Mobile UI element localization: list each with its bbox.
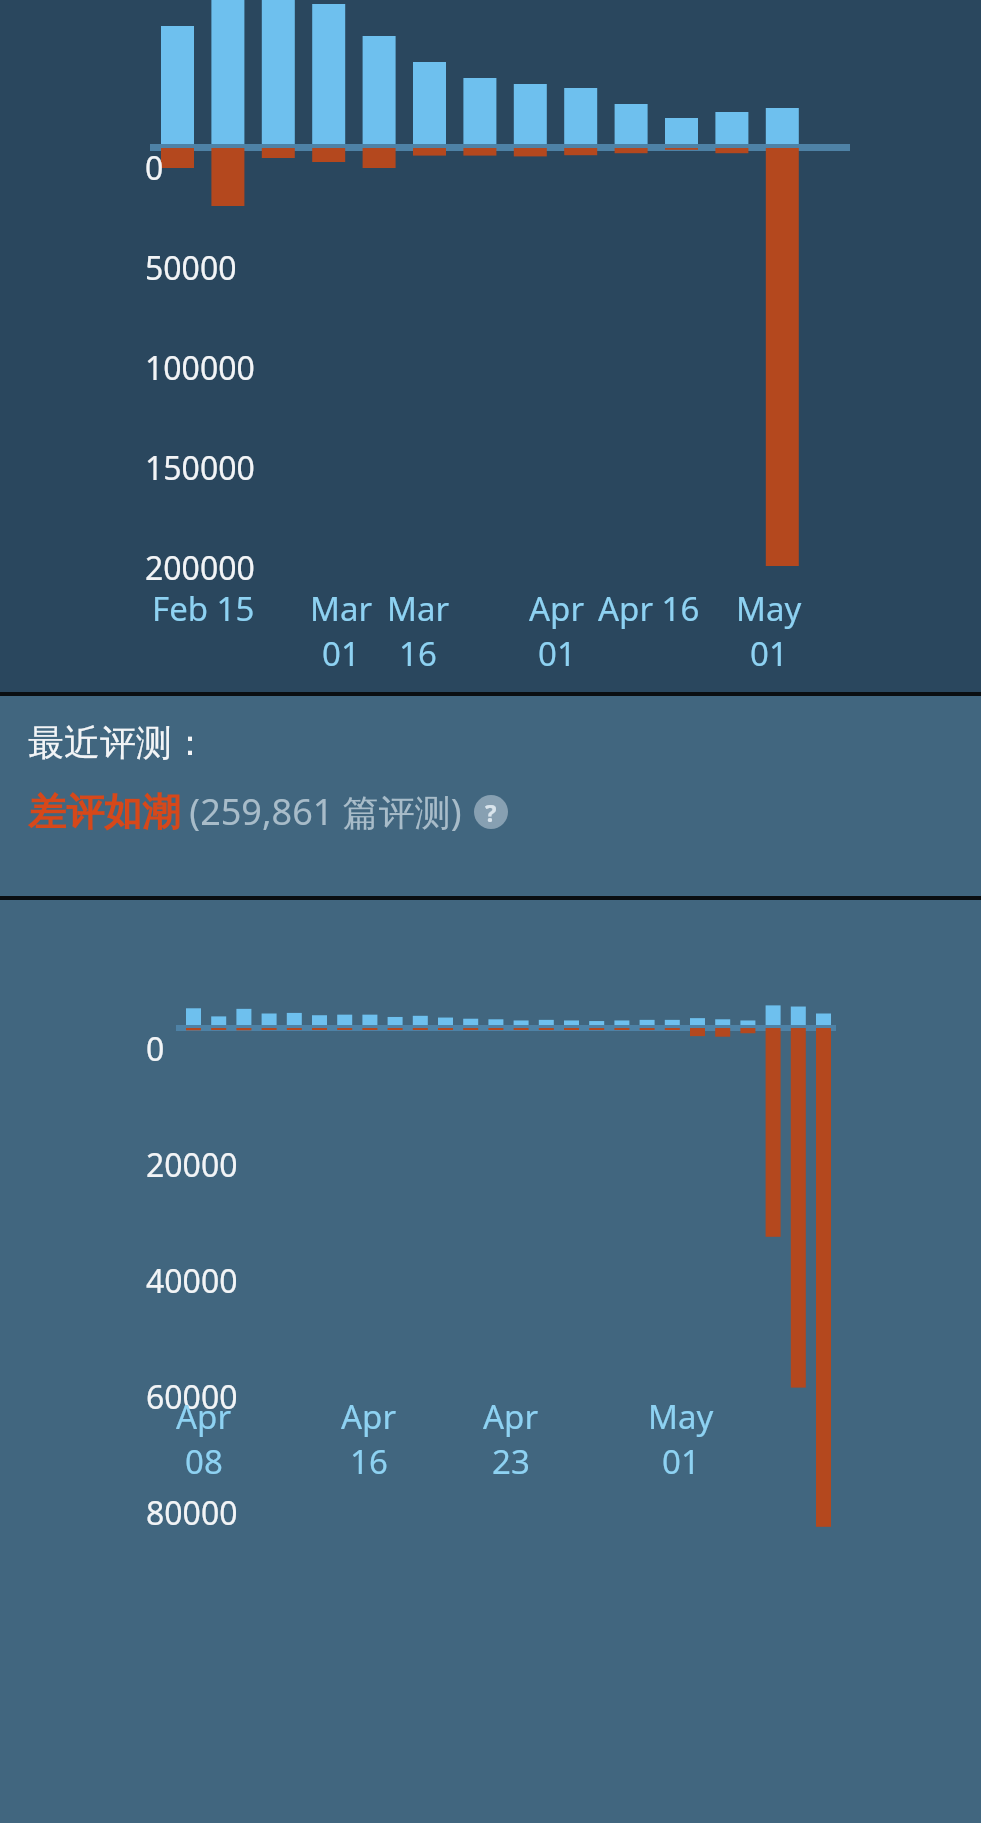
staticText: ? bbox=[485, 796, 497, 829]
button[interactable]: 0 bbox=[0, 0, 981, 692]
staticText: 0 bbox=[146, 1027, 165, 1071]
staticText: 16 bbox=[350, 1439, 388, 1484]
staticText: 150000 bbox=[145, 446, 255, 490]
staticText: 01 bbox=[750, 631, 788, 676]
staticText: Apr 16 bbox=[598, 586, 700, 631]
staticText: 50000 bbox=[145, 246, 237, 290]
staticText: 80000 bbox=[146, 1491, 238, 1535]
staticText: 60000 bbox=[146, 1375, 238, 1419]
staticText: 20000 bbox=[146, 1143, 238, 1187]
staticText: 23 bbox=[492, 1439, 530, 1484]
staticText: 40000 bbox=[146, 1259, 238, 1303]
staticText: (259,861 篇评测) bbox=[180, 787, 462, 836]
button[interactable]: 最近评测： bbox=[0, 696, 981, 896]
staticText: Apr bbox=[176, 1394, 232, 1439]
staticText: Apr bbox=[483, 1394, 539, 1439]
staticText: Mar bbox=[310, 586, 373, 631]
staticText: Mar bbox=[387, 586, 450, 631]
staticText: Apr bbox=[341, 1394, 397, 1439]
staticText: May bbox=[736, 586, 802, 631]
button[interactable]: Review score help bbox=[474, 795, 508, 829]
staticText: 200000 bbox=[145, 546, 255, 590]
staticText: Apr bbox=[529, 586, 585, 631]
staticText: 08 bbox=[185, 1439, 223, 1484]
staticText: 01 bbox=[538, 631, 576, 676]
staticText: 最近评测： bbox=[28, 720, 208, 765]
button[interactable]: 0 bbox=[0, 900, 981, 1823]
staticText: 16 bbox=[399, 631, 437, 676]
staticText: 01 bbox=[662, 1439, 700, 1484]
staticText: 01 bbox=[322, 631, 360, 676]
staticText: May bbox=[648, 1394, 714, 1439]
staticText: Feb 15 bbox=[152, 586, 255, 631]
staticText: 100000 bbox=[145, 346, 255, 390]
staticText: 0 bbox=[145, 146, 164, 190]
staticText: 差评如潮 bbox=[28, 788, 180, 836]
